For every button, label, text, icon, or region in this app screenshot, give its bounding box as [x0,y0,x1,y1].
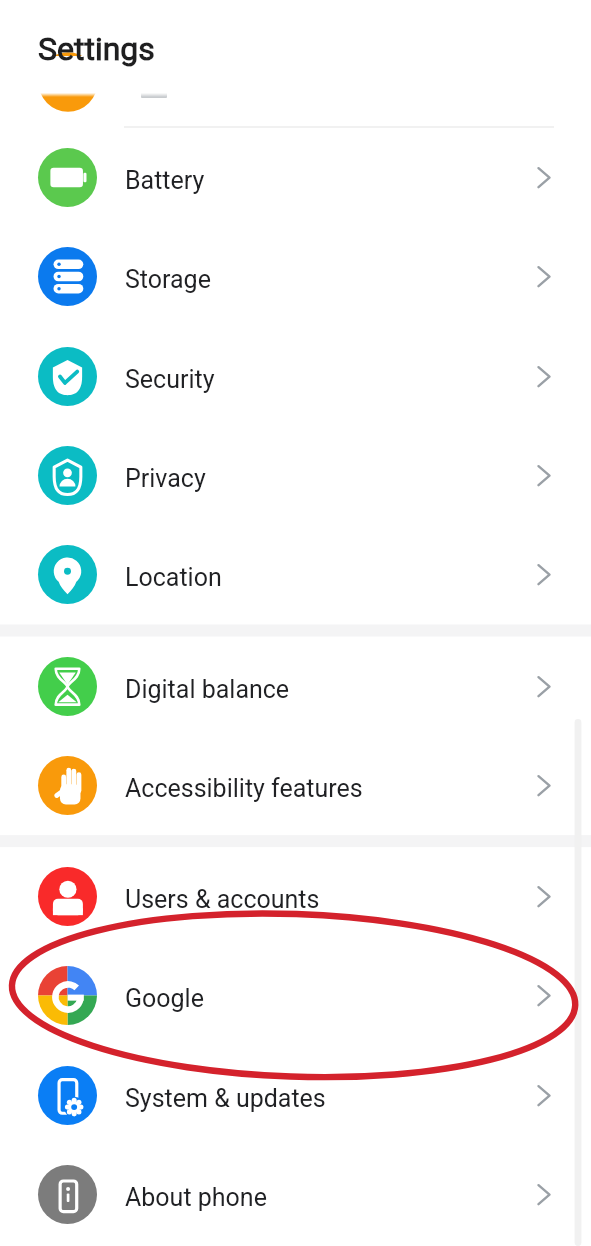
button[interactable]: Battery [0,128,591,227]
staticText: About phone [125,1183,267,1212]
button[interactable]: Location [0,525,591,624]
staticText: Google [125,984,204,1013]
button[interactable]: Storage [0,227,591,326]
button[interactable]: Google [0,946,591,1045]
button[interactable]: Users & accounts [0,847,591,946]
button[interactable]: Digital balance [0,637,591,736]
staticText: Privacy [125,464,206,493]
staticText: System & updates [125,1084,326,1113]
staticText: Settings [38,30,155,68]
button[interactable]: Accessibility features [0,736,591,835]
staticText: Security [125,365,215,394]
button[interactable]: System & updates [0,1046,591,1145]
staticText: Digital balance [125,675,290,704]
button[interactable]: About phone [0,1145,591,1244]
button[interactable]: Privacy [0,426,591,525]
staticText: Battery [125,166,205,195]
staticText: Users & accounts [125,885,320,914]
staticText: Storage [125,265,211,294]
button[interactable]: Security [0,327,591,426]
staticText: Accessibility features [125,774,363,803]
staticText: Location [125,563,222,592]
